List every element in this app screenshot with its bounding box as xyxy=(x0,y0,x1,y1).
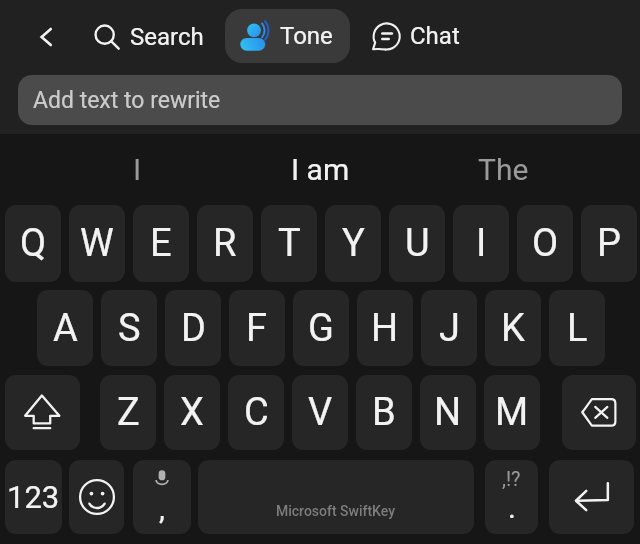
staticText: Chat xyxy=(410,22,460,50)
button[interactable]: T xyxy=(261,205,317,282)
button[interactable]: Add text to rewrite xyxy=(18,75,622,125)
button[interactable]: A xyxy=(37,290,93,366)
staticText: A xyxy=(53,306,78,351)
staticText: . xyxy=(508,490,516,525)
staticText: S xyxy=(118,306,141,351)
button[interactable]: S xyxy=(101,290,157,366)
staticText: I am xyxy=(291,152,350,187)
staticText: I xyxy=(133,152,142,187)
button[interactable]: O xyxy=(517,205,573,282)
button[interactable]: R xyxy=(197,205,253,282)
button[interactable]: Tone xyxy=(225,9,350,63)
staticText: T xyxy=(278,221,301,266)
staticText: 123 xyxy=(7,479,60,515)
staticText: ,!? xyxy=(502,467,521,490)
button[interactable]: Enter xyxy=(549,460,634,534)
button[interactable]: U xyxy=(389,205,445,282)
button[interactable]: H xyxy=(357,290,413,366)
button[interactable]: G xyxy=(293,290,349,366)
staticText: D xyxy=(181,306,206,351)
button[interactable]: Q xyxy=(5,205,61,282)
staticText: L xyxy=(567,306,588,351)
button[interactable]: Emoji xyxy=(69,460,124,534)
staticText: , xyxy=(159,491,165,526)
button[interactable]: J xyxy=(421,290,477,366)
staticText: O xyxy=(532,221,559,266)
button[interactable]: K xyxy=(485,290,541,366)
button[interactable]: Back xyxy=(16,7,76,67)
button[interactable]: L xyxy=(549,290,605,366)
button[interactable]: Z xyxy=(100,375,156,450)
button[interactable]: D xyxy=(165,290,221,366)
button[interactable]: Y xyxy=(325,205,381,282)
button[interactable]: N xyxy=(420,375,476,450)
staticText: Q xyxy=(20,221,47,266)
staticText: Add text to rewrite xyxy=(33,87,221,114)
button[interactable]: The xyxy=(412,134,595,205)
button[interactable]: Search xyxy=(86,4,212,70)
button[interactable]: X xyxy=(164,375,220,450)
staticText: N xyxy=(434,390,462,435)
button[interactable]: M xyxy=(484,375,540,450)
staticText: Microsoft SwiftKey xyxy=(276,503,396,519)
staticText: W xyxy=(80,221,114,266)
button[interactable]: Microsoft SwiftKey xyxy=(198,460,474,534)
button[interactable]: I xyxy=(45,134,229,205)
staticText: Tone xyxy=(280,22,333,50)
staticText: The xyxy=(478,152,529,187)
button[interactable]: Voice input and comma xyxy=(133,460,191,534)
staticText: V xyxy=(308,390,333,435)
staticText: E xyxy=(150,221,172,266)
staticText: X xyxy=(180,390,204,435)
button[interactable]: Period and punctuation xyxy=(485,460,538,534)
staticText: F xyxy=(246,306,268,351)
button[interactable]: C xyxy=(228,375,284,450)
staticText: H xyxy=(371,306,399,351)
staticText: Search xyxy=(130,23,204,51)
staticText: M xyxy=(495,390,529,435)
button[interactable]: Chat xyxy=(363,3,468,69)
button[interactable]: V xyxy=(292,375,348,450)
staticText: C xyxy=(244,390,269,435)
staticText: Z xyxy=(117,390,140,435)
staticText: J xyxy=(439,306,460,351)
button[interactable]: P xyxy=(581,205,637,282)
staticText: K xyxy=(501,306,525,351)
staticText: I xyxy=(476,221,487,266)
button[interactable]: W xyxy=(69,205,125,282)
button[interactable]: E xyxy=(133,205,189,282)
button[interactable]: I am xyxy=(229,134,412,205)
staticText: U xyxy=(405,221,430,266)
staticText: G xyxy=(308,306,334,351)
button[interactable]: Backspace xyxy=(562,375,636,450)
staticText: Y xyxy=(342,221,365,266)
button[interactable]: B xyxy=(356,375,412,450)
button[interactable]: 123 xyxy=(5,460,62,534)
staticText: R xyxy=(213,221,237,266)
staticText: P xyxy=(597,221,621,266)
button[interactable]: F xyxy=(229,290,285,366)
button[interactable]: I xyxy=(453,205,509,282)
button[interactable]: Shift xyxy=(5,375,80,450)
staticText: B xyxy=(372,390,396,435)
